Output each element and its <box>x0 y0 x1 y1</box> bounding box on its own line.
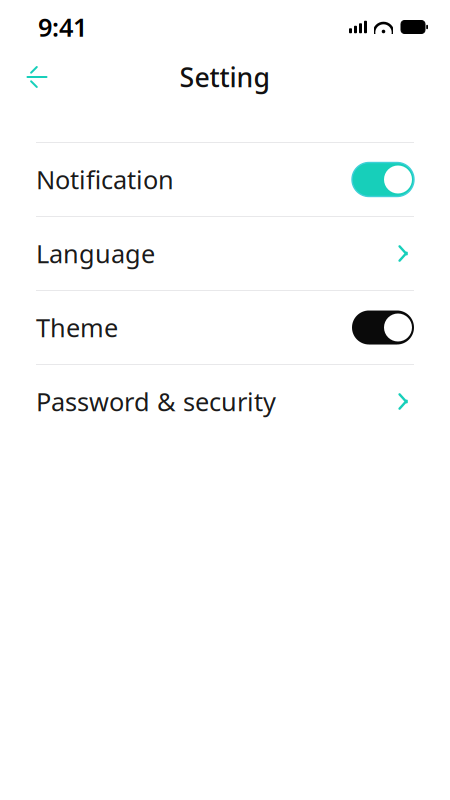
button[interactable]: Language <box>0 217 450 290</box>
staticText: Language <box>36 237 155 270</box>
staticText: 9:41 <box>38 10 87 44</box>
staticText: Password & security <box>36 385 276 418</box>
staticText: Setting <box>179 59 270 95</box>
staticText: Notification <box>36 163 174 196</box>
button[interactable]: Theme <box>0 291 450 364</box>
button[interactable]: Back <box>14 55 58 99</box>
staticText: Theme <box>36 311 118 344</box>
button[interactable]: Password & security <box>0 365 450 438</box>
button[interactable]: Notification <box>0 143 450 216</box>
